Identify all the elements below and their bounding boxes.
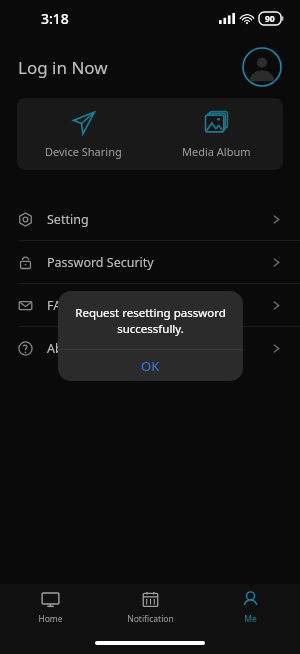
button[interactable]: Profile [242,47,282,87]
staticText: Device Sharing [45,144,122,159]
staticText: About [47,340,83,357]
staticText: OK [141,357,160,375]
button[interactable]: Me [200,584,300,630]
staticText: Media Album [182,144,251,159]
staticText: Setting [47,211,89,228]
button[interactable]: Device Sharing [17,98,150,170]
staticText: Home [38,613,63,625]
button[interactable]: Log in Now [18,56,108,79]
staticText: Me [244,613,257,625]
staticText: 90 [265,13,275,25]
staticText: 3:18 [41,9,69,28]
button[interactable]: Home [0,584,100,630]
staticText: FAQ [47,297,71,314]
button[interactable]: Setting [0,198,300,240]
button[interactable]: FAQ [0,284,300,326]
staticText: Notification [127,613,174,625]
button[interactable]: Notification [100,584,200,630]
button[interactable]: Password Security [0,241,300,283]
button[interactable]: Media Album [150,98,283,170]
staticText: Request resetting password successfully. [74,305,227,336]
staticText: Password Security [47,254,154,271]
button[interactable]: OK [58,350,243,381]
button[interactable]: About [0,327,300,369]
